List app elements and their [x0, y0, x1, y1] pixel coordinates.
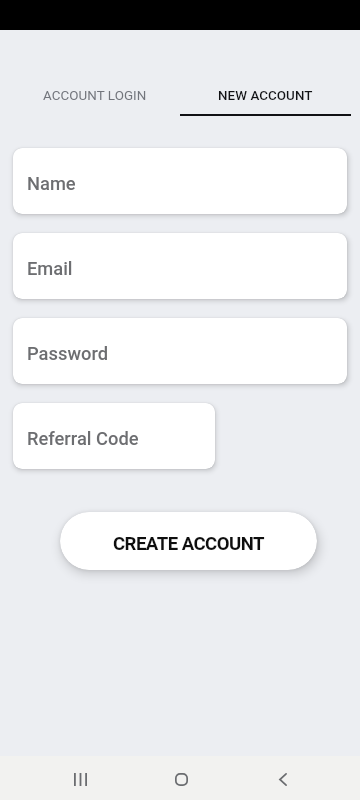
staticText: Email	[27, 258, 73, 279]
button[interactable]: CREATE ACCOUNT	[60, 512, 317, 570]
staticText: CREATE ACCOUNT	[113, 533, 264, 555]
button[interactable]: Back	[232, 758, 333, 800]
staticText: ACCOUNT LOGIN	[43, 88, 147, 104]
button[interactable]: ACCOUNT LOGIN	[9, 56, 180, 116]
staticText: Name	[27, 173, 76, 194]
staticText: NEW ACCOUNT	[218, 88, 313, 104]
staticText: Referral Code	[27, 428, 139, 449]
button[interactable]: Referral Code	[13, 403, 215, 469]
button[interactable]: Name	[13, 148, 347, 214]
button[interactable]: Home	[131, 758, 232, 800]
button[interactable]: Email	[13, 233, 347, 299]
staticText: Password	[27, 343, 109, 364]
button[interactable]: Recent apps	[30, 758, 131, 800]
button[interactable]: Password	[13, 318, 347, 384]
button[interactable]: NEW ACCOUNT	[180, 56, 351, 116]
